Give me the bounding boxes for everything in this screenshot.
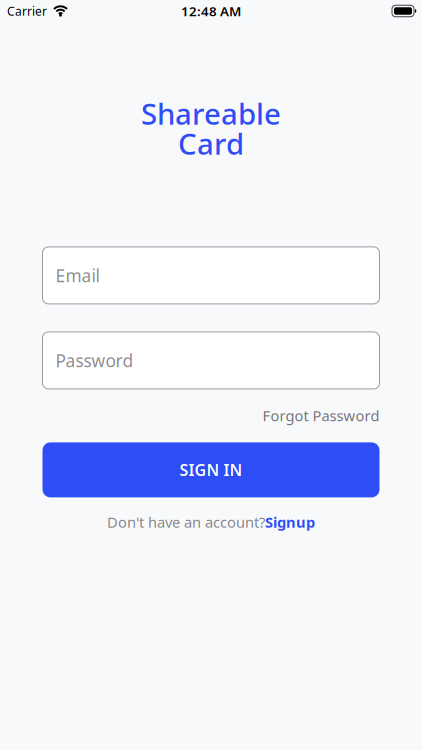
staticText: Don't have an account? (107, 512, 265, 532)
staticText: Card (178, 124, 244, 163)
staticText: Forgot Password (262, 406, 379, 425)
button[interactable]: SIGN IN (42, 442, 379, 497)
button[interactable]: Email (42, 247, 379, 304)
staticText: 12:48 AM (181, 2, 241, 20)
staticText: Signup (265, 512, 315, 532)
button[interactable]: Forgot Password (262, 406, 379, 425)
staticText: Shareable (141, 94, 281, 133)
staticText: Carrier (7, 3, 47, 19)
button[interactable]: Don't have an account? (107, 512, 315, 532)
staticText: Email (55, 264, 99, 287)
button[interactable]: Password (42, 332, 379, 389)
staticText: SIGN IN (179, 459, 242, 480)
staticText: Password (55, 349, 133, 372)
